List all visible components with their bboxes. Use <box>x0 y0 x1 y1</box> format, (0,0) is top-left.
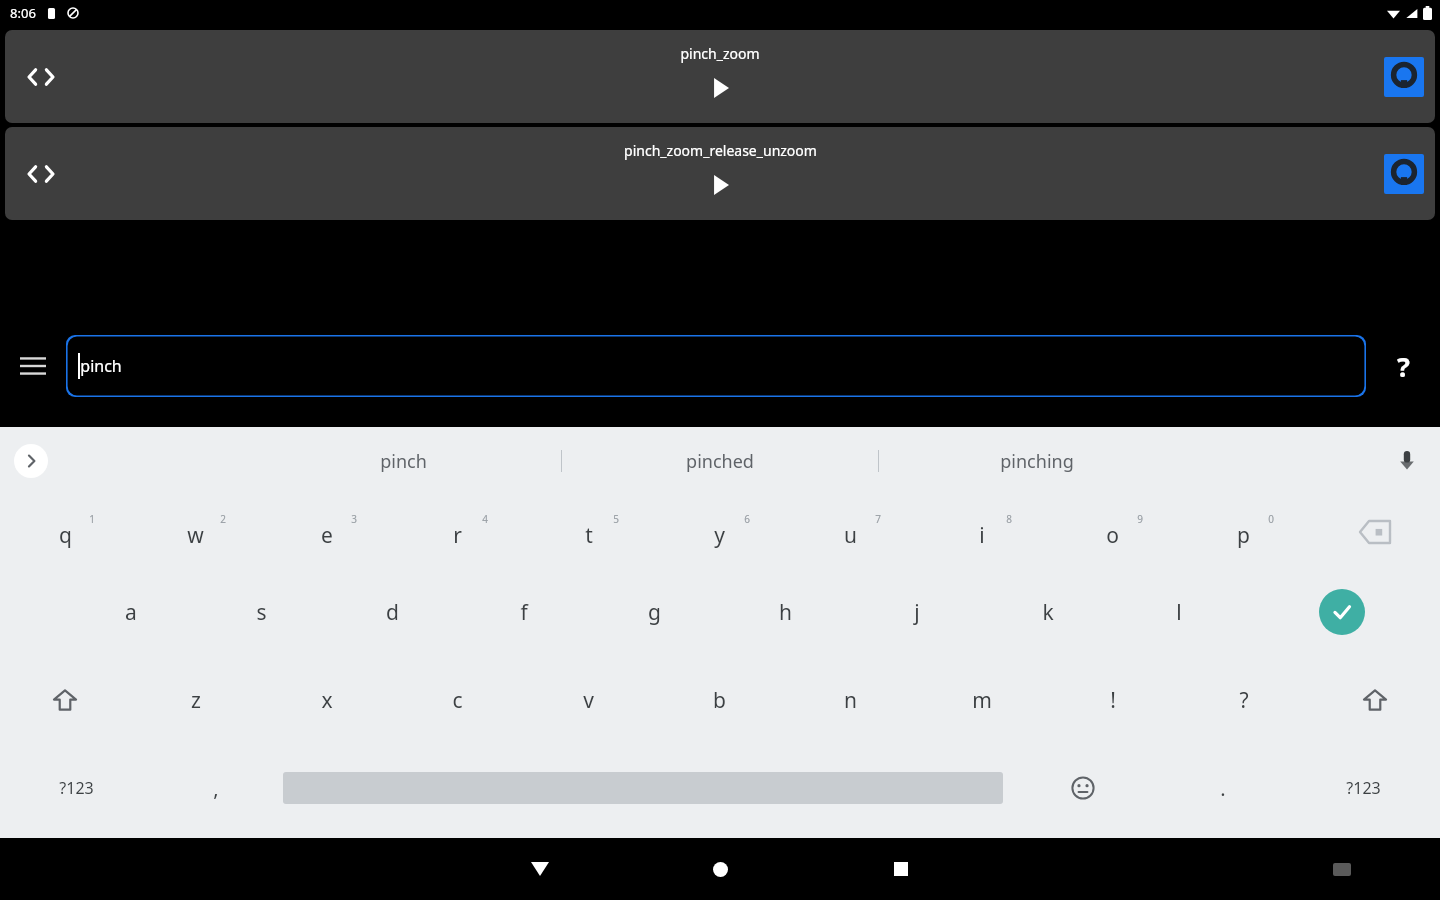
button[interactable]: Open in GitHub <box>1384 57 1424 97</box>
button[interactable]: o <box>1047 495 1178 568</box>
button[interactable]: Emoji <box>1006 744 1160 832</box>
staticText: 6 <box>744 512 750 526</box>
button[interactable]: q <box>0 495 130 568</box>
staticText: a <box>125 598 137 627</box>
button[interactable]: m <box>916 656 1047 744</box>
staticText: pinching <box>1000 449 1074 474</box>
staticText: j <box>914 598 920 627</box>
button[interactable]: h <box>720 568 851 656</box>
staticText: r <box>453 521 462 550</box>
button[interactable]: x <box>261 656 392 744</box>
button[interactable]: Play <box>698 163 742 207</box>
button[interactable]: z <box>130 656 261 744</box>
button[interactable]: ? <box>1178 656 1309 744</box>
staticText: 9 <box>1137 512 1143 526</box>
staticText: , <box>213 775 219 802</box>
button[interactable]: Back <box>516 845 564 893</box>
button[interactable]: pinching <box>879 437 1195 485</box>
button[interactable]: b <box>654 656 785 744</box>
staticText: c <box>452 686 463 715</box>
button[interactable]: . <box>1160 744 1286 832</box>
staticText: z <box>191 686 201 715</box>
button[interactable]: i <box>916 495 1047 568</box>
button[interactable]: Shift <box>0 656 130 744</box>
button[interactable]: View code <box>19 152 63 196</box>
staticText: q <box>59 521 72 550</box>
staticText: ?123 <box>1346 777 1381 799</box>
staticText: h <box>779 598 792 627</box>
button[interactable]: ?123 <box>0 744 153 832</box>
staticText: pinch <box>80 355 122 377</box>
staticText: pinch_zoom_release_unzoom <box>624 141 817 160</box>
staticText: 2 <box>220 512 226 526</box>
button[interactable]: Enter <box>1244 568 1440 656</box>
button[interactable]: Menu <box>0 326 66 406</box>
staticText: b <box>713 686 726 715</box>
button[interactable]: c <box>392 656 523 744</box>
button[interactable]: t <box>523 495 654 568</box>
staticText: d <box>386 598 399 627</box>
staticText: y <box>714 521 725 550</box>
staticText: pinched <box>686 449 754 474</box>
staticText: n <box>844 686 857 715</box>
staticText: 5 <box>613 512 619 526</box>
button[interactable]: Backspace <box>1309 495 1440 568</box>
button[interactable]: Home <box>696 845 744 893</box>
button[interactable]: s <box>196 568 327 656</box>
button[interactable]: pinch_zoom <box>5 30 1435 123</box>
staticText: i <box>979 521 985 550</box>
button[interactable]: l <box>1113 568 1244 656</box>
button[interactable]: Shift <box>1309 656 1440 744</box>
button[interactable]: ! <box>1047 656 1178 744</box>
staticText: w <box>187 521 204 550</box>
button[interactable]: , <box>153 744 279 832</box>
button[interactable]: v <box>523 656 654 744</box>
staticText: p <box>1237 521 1250 550</box>
staticText: 7 <box>875 512 881 526</box>
staticText: 0 <box>1268 512 1274 526</box>
staticText: l <box>1176 598 1182 627</box>
button[interactable]: Switch keyboard <box>1322 849 1362 889</box>
button[interactable]: Play <box>698 66 742 110</box>
button[interactable]: w <box>130 495 261 568</box>
staticText: ?123 <box>59 777 94 799</box>
staticText: g <box>648 598 661 627</box>
button[interactable]: f <box>458 568 589 656</box>
button[interactable]: Help <box>1366 326 1440 406</box>
button[interactable]: d <box>327 568 458 656</box>
button[interactable]: a <box>65 568 196 656</box>
button[interactable]: p <box>1178 495 1309 568</box>
button[interactable]: k <box>982 568 1113 656</box>
staticText: k <box>1042 598 1054 627</box>
button[interactable]: u <box>785 495 916 568</box>
button[interactable]: ?123 <box>1286 744 1440 832</box>
staticText: 1 <box>89 512 95 526</box>
staticText: s <box>256 598 267 627</box>
button[interactable]: y <box>654 495 785 568</box>
button[interactable]: Voice input <box>1390 444 1424 478</box>
button[interactable]: j <box>851 568 982 656</box>
staticText: e <box>321 521 333 550</box>
button[interactable]: n <box>785 656 916 744</box>
staticText: 8 <box>1006 512 1012 526</box>
button[interactable]: pinched <box>562 437 878 485</box>
staticText: x <box>321 686 333 715</box>
staticText: m <box>972 686 992 715</box>
button[interactable]: More suggestions <box>12 442 50 480</box>
button[interactable]: pinch_zoom_release_unzoom <box>5 127 1435 220</box>
button[interactable]: e <box>261 495 392 568</box>
staticText: 8:06 <box>10 4 36 22</box>
button[interactable]: g <box>589 568 720 656</box>
staticText: v <box>583 686 594 715</box>
button[interactable]: r <box>392 495 523 568</box>
button[interactable]: Space <box>279 744 1006 832</box>
staticText: ! <box>1110 686 1116 715</box>
button[interactable]: Recents <box>877 845 925 893</box>
staticText: ? <box>1397 348 1410 385</box>
staticText: 3 <box>351 512 357 526</box>
button[interactable]: Open in GitHub <box>1384 154 1424 194</box>
staticText: u <box>844 521 857 550</box>
button[interactable]: View code <box>19 55 63 99</box>
button[interactable]: pinch <box>66 335 1366 397</box>
button[interactable]: pinch <box>245 437 561 485</box>
